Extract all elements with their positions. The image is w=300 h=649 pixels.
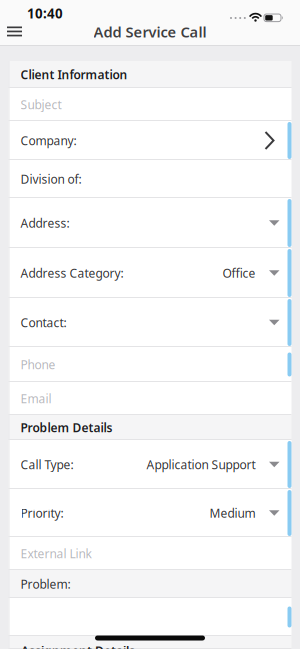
staticText: Problem: bbox=[20, 576, 70, 592]
button[interactable]: External Link bbox=[8, 537, 291, 570]
staticText: Application Support bbox=[146, 456, 255, 472]
staticText: Problem Details bbox=[20, 419, 112, 435]
button[interactable]: Priority: bbox=[8, 489, 291, 537]
button[interactable]: Phone bbox=[8, 347, 291, 382]
button[interactable]: Email bbox=[8, 382, 291, 415]
staticText: External Link bbox=[20, 545, 91, 561]
staticText: Contact: bbox=[20, 314, 66, 330]
staticText: Email bbox=[20, 390, 51, 406]
button[interactable] bbox=[8, 598, 291, 636]
staticText: 10:40 bbox=[27, 4, 63, 22]
staticText: Phone bbox=[20, 356, 55, 372]
button[interactable]: Address: bbox=[8, 198, 291, 248]
button[interactable]: Company: bbox=[8, 121, 291, 160]
staticText: Office bbox=[222, 265, 255, 281]
staticText: Client Information bbox=[20, 66, 127, 82]
staticText: Priority: bbox=[20, 505, 63, 521]
button[interactable]: Call Type: bbox=[8, 440, 291, 489]
button[interactable]: Division of: bbox=[8, 160, 291, 198]
staticText: Address: bbox=[20, 215, 69, 231]
button[interactable] bbox=[1, 20, 28, 42]
staticText: Assignment Details bbox=[21, 643, 135, 649]
staticText: Division of: bbox=[20, 171, 81, 187]
button[interactable]: Subject bbox=[8, 88, 291, 121]
button[interactable]: Contact: bbox=[8, 298, 291, 347]
staticText: Subject bbox=[20, 96, 61, 112]
staticText: Address Category: bbox=[20, 265, 123, 281]
staticText: Add Service Call bbox=[93, 22, 206, 41]
button[interactable]: Address Category: bbox=[8, 248, 291, 298]
staticText: Company: bbox=[20, 132, 76, 148]
staticText: Call Type: bbox=[20, 456, 73, 472]
staticText: Medium bbox=[209, 505, 255, 521]
